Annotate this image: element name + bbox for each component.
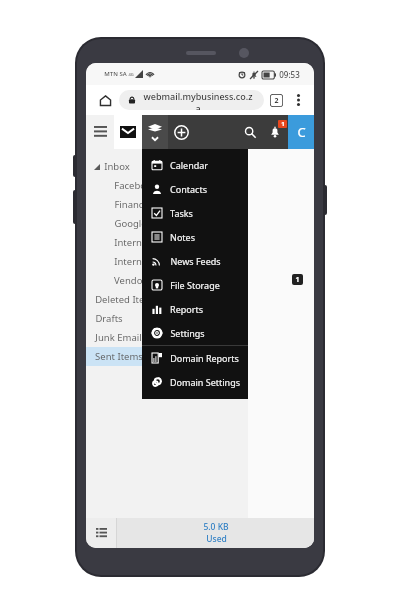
staticText: Used [206, 533, 227, 545]
staticText: 5.0 KB [203, 521, 229, 533]
button[interactable]: Tasks [142, 201, 248, 225]
button[interactable]: News Feeds [142, 249, 248, 273]
button[interactable]: Contacts [142, 177, 248, 201]
button[interactable]: Notes [142, 225, 248, 249]
staticText: Junk Email [95, 331, 142, 344]
staticText: Internal [114, 255, 150, 268]
button[interactable]: Notifications, 1 new [262, 115, 288, 149]
button[interactable]: Domain Settings [142, 370, 248, 394]
staticText: webmail.mybusiness.co.za [141, 90, 255, 110]
staticText: Facebook [114, 179, 157, 192]
staticText: 4G [128, 72, 134, 77]
button[interactable]: Domain Reports [142, 346, 248, 370]
button[interactable]: Internal [86, 233, 314, 252]
staticText: 1 [295, 275, 300, 285]
button[interactable]: Account [288, 115, 314, 149]
button[interactable]: Tabs: 2 open [270, 94, 283, 107]
staticText: Notes [170, 231, 195, 243]
button[interactable]: New [168, 115, 194, 149]
staticText: Financial [114, 198, 154, 211]
button[interactable]: Inbox [86, 157, 314, 176]
staticText: MTN SA [104, 70, 127, 78]
staticText: Google [114, 217, 147, 230]
button[interactable]: Deleted Items [86, 290, 314, 309]
button[interactable]: Settings [142, 321, 248, 345]
button[interactable]: Apps [142, 115, 168, 149]
staticText: 2 [274, 96, 279, 106]
button[interactable]: 5.0 KB [117, 518, 314, 548]
staticText: Calendar [170, 159, 208, 171]
button[interactable]: Home [94, 89, 116, 111]
button[interactable]: Facebook [86, 176, 314, 195]
button[interactable]: Internal [86, 252, 314, 271]
staticText: File Storage [170, 279, 220, 291]
button[interactable]: Mail [114, 115, 142, 149]
staticText: 09:53 [279, 69, 300, 80]
button[interactable]: Google [86, 214, 314, 233]
staticText: Vendors [114, 274, 151, 287]
button[interactable]: Search [238, 115, 262, 149]
button[interactable]: Junk Email [86, 328, 314, 347]
staticText: C [297, 123, 306, 141]
staticText: Inbox [104, 160, 130, 173]
staticText: 1 [281, 120, 285, 128]
staticText: Internal [114, 236, 150, 249]
staticText: Domain Settings [170, 376, 240, 388]
staticText: Deleted Items [95, 293, 158, 306]
button[interactable]: List view [86, 518, 116, 548]
staticText: Domain Reports [170, 352, 239, 364]
staticText: Contacts [170, 183, 207, 195]
button[interactable]: Vendors [86, 271, 314, 290]
staticText: Reports [170, 303, 203, 315]
staticText: News Feeds [170, 255, 221, 267]
staticText: Drafts [95, 312, 123, 325]
button[interactable]: Sent Items [86, 347, 314, 366]
button[interactable]: More options [290, 92, 306, 108]
button[interactable]: webmail.mybusiness.co.za [119, 90, 264, 110]
staticText: Settings [170, 327, 205, 339]
button[interactable]: Reports [142, 297, 248, 321]
button[interactable]: Financial [86, 195, 314, 214]
staticText: Tasks [170, 207, 193, 219]
button[interactable]: File Storage [142, 273, 248, 297]
staticText: Sent Items [95, 350, 143, 363]
button[interactable]: Drafts [86, 309, 314, 328]
button[interactable]: Menu [86, 115, 114, 149]
button[interactable]: Calendar [142, 153, 248, 177]
